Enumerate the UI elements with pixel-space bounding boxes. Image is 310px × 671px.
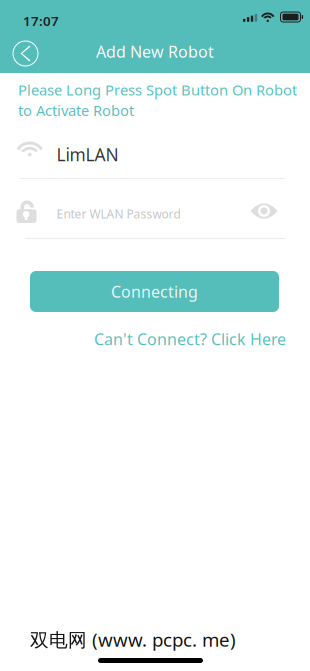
- staticText: 双电网 (www. pcpc. me): [30, 627, 236, 652]
- button[interactable]: Can't Connect? Click Here: [76, 331, 286, 347]
- staticText: LimLAN: [56, 143, 118, 166]
- staticText: Connecting: [111, 281, 198, 302]
- staticText: Add New Robot: [96, 41, 214, 62]
- button[interactable]: Back: [3, 32, 47, 75]
- staticText: 17:07: [23, 12, 59, 30]
- button[interactable]: Connecting: [30, 271, 279, 312]
- staticText: Can't Connect? Click Here: [94, 328, 286, 350]
- staticText: Please Long Press Spot Button On Robot t…: [18, 80, 297, 120]
- staticText: Enter WLAN Password: [56, 206, 180, 222]
- button[interactable]: Show password: [245, 194, 283, 228]
